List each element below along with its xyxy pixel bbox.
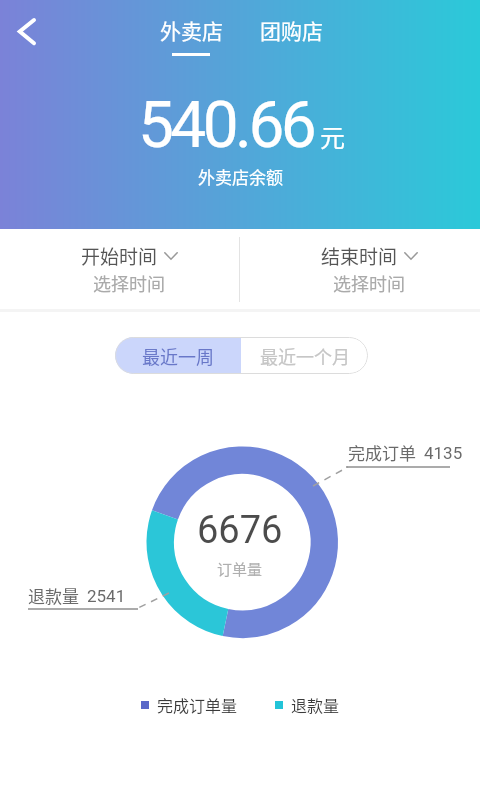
button[interactable]: 完成订单量 [141,693,238,716]
button[interactable]: 结束时间 [249,229,480,309]
staticText: 退款量 [291,693,340,716]
button[interactable]: 开始时间 [9,229,249,309]
staticText: 团购店 [260,15,323,45]
staticText: 4135 [424,443,463,463]
staticText: 最近一周 [142,343,214,369]
staticText: 结束时间 [321,242,398,270]
button[interactable]: 最近一个月 [241,337,368,374]
staticText: 最近一个月 [260,343,350,369]
staticText: 开始时间 [81,242,158,270]
staticText: 退款量 [28,583,79,608]
staticText: 6676 [197,508,283,553]
staticText: 订单量 [217,558,263,580]
button[interactable]: 最近一周 [115,337,241,374]
staticText: 外卖店余额 [198,164,283,189]
staticText: 完成订单 [348,440,416,465]
staticText: 元 [320,118,346,154]
button[interactable]: 退款量 [275,693,340,716]
staticText: 540.66 [138,88,314,163]
staticText: 2541 [87,586,126,606]
button[interactable]: 外卖店 [158,13,225,47]
button[interactable]: 团购店 [258,13,325,47]
staticText: 完成订单量 [157,693,238,716]
staticText: 选择时间 [333,270,405,296]
staticText: 选择时间 [93,270,165,296]
button[interactable]: Back [0,0,52,52]
staticText: 外卖店 [160,15,223,45]
